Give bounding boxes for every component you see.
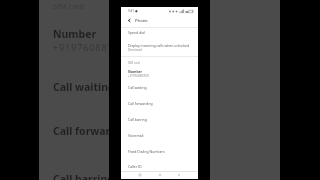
other: Back bbox=[127, 18, 132, 23]
staticText: Phone bbox=[135, 18, 148, 24]
button[interactable]: Call forwarding bbox=[121, 97, 198, 114]
staticText: SIM card bbox=[128, 61, 140, 65]
staticText: Number bbox=[128, 69, 143, 74]
staticText: Number bbox=[53, 27, 97, 41]
button[interactable]: Recent apps bbox=[137, 172, 143, 177]
staticText: Voicemail bbox=[128, 133, 144, 138]
staticText: +919760887601 bbox=[53, 41, 109, 53]
staticText: Fixed Dialing Numbers bbox=[128, 149, 165, 154]
staticText: Call barring bbox=[128, 117, 147, 122]
button[interactable]: Call waiting bbox=[121, 81, 198, 98]
staticText: Speed dial bbox=[128, 30, 145, 35]
button[interactable]: Voicemail bbox=[121, 129, 198, 146]
button[interactable]: Fixed Dialing Numbers bbox=[121, 145, 198, 162]
button[interactable]: Display incoming calls when unlocked bbox=[121, 39, 198, 56]
staticText: Display incoming calls when unlocked bbox=[128, 43, 190, 48]
button[interactable]: Home bbox=[157, 172, 163, 177]
staticText: Call barring bbox=[53, 172, 109, 180]
staticText: SIM card bbox=[53, 1, 85, 11]
staticText: +919760887601 bbox=[128, 74, 150, 78]
staticText: Caller ID bbox=[128, 164, 142, 169]
button[interactable]: Caller ID bbox=[121, 160, 198, 169]
staticText: Dismissed bbox=[128, 48, 142, 52]
button[interactable]: Back bbox=[176, 172, 182, 177]
button[interactable]: Back bbox=[121, 15, 198, 26]
button[interactable]: Speed dial bbox=[121, 26, 198, 43]
button[interactable]: Call barring bbox=[121, 113, 198, 130]
staticText: 9:41 ● bbox=[128, 9, 138, 13]
button[interactable]: Number bbox=[121, 65, 198, 82]
staticText: Call forwarding bbox=[128, 101, 153, 106]
staticText: Call waiting bbox=[128, 85, 147, 90]
staticText: Call forwarding bbox=[53, 124, 109, 138]
staticText: Call waiting bbox=[53, 80, 109, 94]
